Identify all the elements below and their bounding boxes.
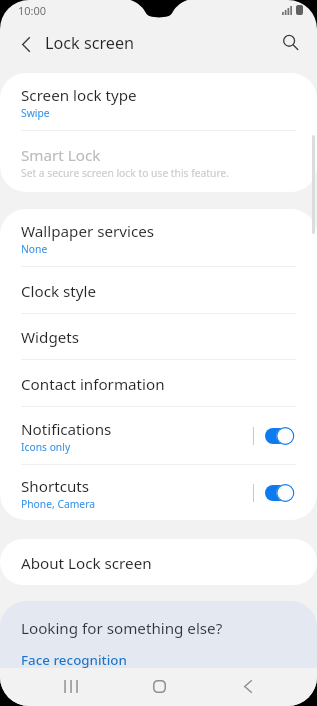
staticText: Clock style bbox=[21, 281, 97, 302]
staticText: Swipe bbox=[21, 106, 50, 120]
staticText: Looking for something else? bbox=[21, 618, 223, 639]
button[interactable]: Wallpaper services bbox=[0, 209, 317, 266]
staticText: Notifications bbox=[21, 419, 112, 440]
staticText: Wallpaper services bbox=[21, 221, 155, 242]
staticText: Screen lock type bbox=[21, 85, 137, 106]
staticText: Shortcuts bbox=[21, 476, 90, 497]
staticText: Phone, Camera bbox=[21, 497, 95, 511]
staticText: 10:00 bbox=[18, 3, 47, 18]
button[interactable]: Widgets bbox=[0, 314, 317, 359]
staticText: Set a secure screen lock to use this fea… bbox=[21, 166, 230, 180]
button[interactable]: Smart Lock bbox=[0, 131, 317, 192]
button[interactable]: Toggle bbox=[265, 427, 295, 445]
staticText: Widgets bbox=[21, 327, 80, 348]
button[interactable]: Recent apps bbox=[55, 668, 85, 698]
button[interactable]: Search bbox=[270, 22, 310, 62]
button[interactable]: Shortcuts bbox=[0, 465, 317, 520]
staticText: Smart Lock bbox=[21, 145, 101, 166]
staticText: Icons only bbox=[21, 440, 71, 454]
button[interactable]: Face recognition bbox=[21, 651, 127, 669]
staticText: Lock screen bbox=[45, 32, 135, 54]
button[interactable]: About Lock screen bbox=[0, 539, 317, 585]
button[interactable]: Back bbox=[233, 668, 263, 698]
button[interactable]: Contact information bbox=[0, 360, 317, 406]
staticText: Contact information bbox=[21, 374, 165, 395]
staticText: About Lock screen bbox=[21, 553, 152, 574]
button[interactable]: Screen lock type bbox=[0, 73, 317, 130]
button[interactable]: Navigate up bbox=[6, 24, 46, 64]
button[interactable]: Toggle bbox=[265, 484, 295, 502]
button[interactable]: Clock style bbox=[0, 267, 317, 313]
staticText: None bbox=[21, 242, 48, 256]
staticText: Face recognition bbox=[21, 651, 127, 669]
button[interactable]: Notifications bbox=[0, 407, 317, 464]
button[interactable]: Home bbox=[144, 668, 174, 698]
